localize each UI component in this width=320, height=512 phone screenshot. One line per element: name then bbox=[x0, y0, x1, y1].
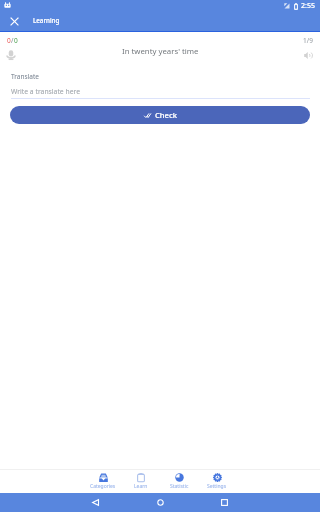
staticText: Learning bbox=[33, 16, 60, 24]
staticText: 2:55 bbox=[301, 1, 315, 11]
button[interactable]: Recent apps bbox=[215, 493, 233, 512]
staticText: 0 bbox=[14, 36, 18, 45]
staticText: 1/9 bbox=[303, 36, 313, 45]
button[interactable]: Settings bbox=[198, 470, 236, 492]
staticText: Categories bbox=[90, 483, 116, 490]
staticText: Learn bbox=[134, 483, 148, 490]
staticText: In twenty years' time bbox=[122, 46, 199, 57]
button[interactable]: Record voice bbox=[2, 46, 20, 64]
button[interactable]: Home bbox=[151, 493, 169, 512]
staticText: / bbox=[11, 36, 14, 45]
button[interactable]: Check bbox=[10, 106, 310, 124]
button[interactable]: Learn bbox=[122, 470, 160, 492]
staticText: 0 bbox=[7, 36, 11, 45]
staticText: Settings bbox=[207, 483, 227, 490]
button[interactable]: Close bbox=[0, 12, 28, 31]
button[interactable]: Back bbox=[86, 493, 104, 512]
staticText: Statistic bbox=[170, 483, 189, 490]
button[interactable]: Statistic bbox=[160, 470, 198, 492]
staticText: Check bbox=[155, 110, 177, 120]
staticText: Write a translate here bbox=[11, 87, 81, 96]
staticText: Translate bbox=[11, 72, 39, 81]
button[interactable]: Categories bbox=[84, 470, 122, 492]
button[interactable]: Play audio bbox=[299, 46, 317, 64]
